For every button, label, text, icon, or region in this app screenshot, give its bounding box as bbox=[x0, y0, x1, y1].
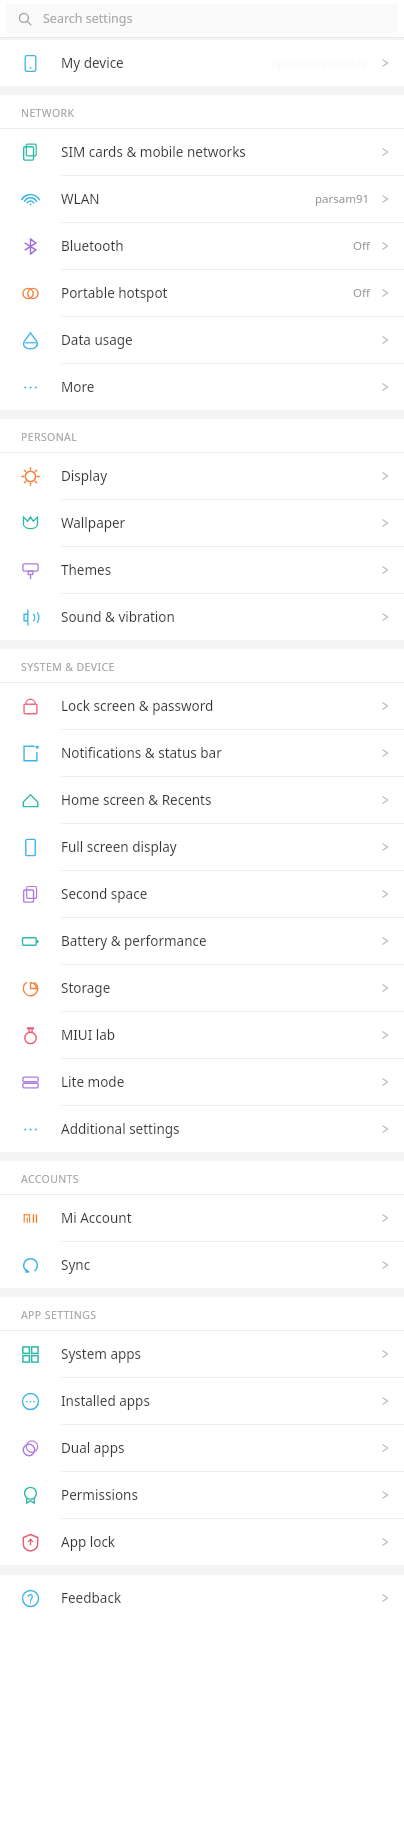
button[interactable]: Notifications & status bar bbox=[0, 730, 404, 776]
staticText: Bluetooth bbox=[61, 237, 124, 255]
button[interactable]: Permissions bbox=[0, 1472, 404, 1518]
button[interactable]: Storage bbox=[0, 965, 404, 1011]
staticText: Feedback bbox=[61, 1589, 122, 1607]
button[interactable]: Wallpaper bbox=[0, 500, 404, 546]
staticText: Additional settings bbox=[61, 1120, 180, 1138]
button[interactable]: Battery & performance bbox=[0, 918, 404, 964]
staticText: Data usage bbox=[61, 331, 133, 349]
staticText: SYSTEM & DEVICE bbox=[21, 660, 115, 674]
button[interactable]: Sync bbox=[0, 1242, 404, 1288]
button[interactable]: Installed apps bbox=[0, 1378, 404, 1424]
staticText: Installed apps bbox=[61, 1392, 150, 1410]
button[interactable]: Feedback bbox=[0, 1575, 404, 1621]
staticText: Lite mode bbox=[61, 1073, 125, 1091]
staticText: More bbox=[61, 378, 95, 396]
staticText: Mi Account bbox=[61, 1209, 132, 1227]
staticText: Portable hotspot bbox=[61, 284, 168, 302]
staticText: Permissions bbox=[61, 1486, 138, 1504]
staticText: Lock screen & password bbox=[61, 697, 214, 715]
staticText: Wallpaper bbox=[61, 514, 126, 532]
staticText: App lock bbox=[61, 1533, 116, 1551]
staticText: WLAN bbox=[61, 190, 100, 208]
staticText: Battery & performance bbox=[61, 932, 207, 950]
button[interactable]: Second space bbox=[0, 871, 404, 917]
staticText: Storage bbox=[61, 979, 111, 997]
button[interactable]: Additional settings bbox=[0, 1106, 404, 1152]
staticText: MIUI lab bbox=[61, 1026, 116, 1044]
button[interactable]: MIUI lab bbox=[0, 1012, 404, 1058]
button[interactable]: Themes bbox=[0, 547, 404, 593]
button[interactable]: Full screen display bbox=[0, 824, 404, 870]
button[interactable]: More bbox=[0, 364, 404, 410]
button[interactable]: Portable hotspot bbox=[0, 270, 404, 316]
staticText: My device bbox=[61, 54, 124, 72]
staticText: System apps bbox=[61, 1345, 142, 1363]
button[interactable]: Sound & vibration bbox=[0, 594, 404, 640]
staticText: Notifications & status bar bbox=[61, 744, 222, 762]
staticText: Sync bbox=[61, 1256, 91, 1274]
button[interactable]: SIM cards & mobile networks bbox=[0, 129, 404, 175]
button[interactable]: Search settings bbox=[6, 4, 398, 33]
button[interactable]: Mi Account bbox=[0, 1195, 404, 1241]
staticText: ACCOUNTS bbox=[21, 1172, 80, 1186]
button[interactable]: Lock screen & password bbox=[0, 683, 404, 729]
button[interactable]: System apps bbox=[0, 1331, 404, 1377]
button[interactable]: Display bbox=[0, 453, 404, 499]
staticText: Off bbox=[353, 238, 370, 254]
staticText: Sound & vibration bbox=[61, 608, 175, 626]
button[interactable]: My device bbox=[0, 40, 404, 86]
staticText: Search settings bbox=[43, 10, 133, 27]
button[interactable]: Data usage bbox=[0, 317, 404, 363]
staticText: Full screen display bbox=[61, 838, 177, 856]
staticText: Off bbox=[353, 285, 370, 301]
button[interactable]: WLAN bbox=[0, 176, 404, 222]
staticText: APP SETTINGS bbox=[21, 1308, 97, 1322]
staticText: parsam91 bbox=[315, 191, 370, 207]
button[interactable]: Dual apps bbox=[0, 1425, 404, 1471]
staticText: NETWORK bbox=[21, 106, 75, 120]
staticText: Second space bbox=[61, 885, 148, 903]
button[interactable]: App lock bbox=[0, 1519, 404, 1565]
button[interactable]: Lite mode bbox=[0, 1059, 404, 1105]
button[interactable]: Home screen & Recents bbox=[0, 777, 404, 823]
staticText: PERSONAL bbox=[21, 430, 78, 444]
staticText: Home screen & Recents bbox=[61, 791, 212, 809]
staticText: SIM cards & mobile networks bbox=[61, 143, 246, 161]
staticText: Themes bbox=[61, 561, 112, 579]
button[interactable]: Bluetooth bbox=[0, 223, 404, 269]
staticText: Dual apps bbox=[61, 1439, 125, 1457]
staticText: Display bbox=[61, 467, 108, 485]
